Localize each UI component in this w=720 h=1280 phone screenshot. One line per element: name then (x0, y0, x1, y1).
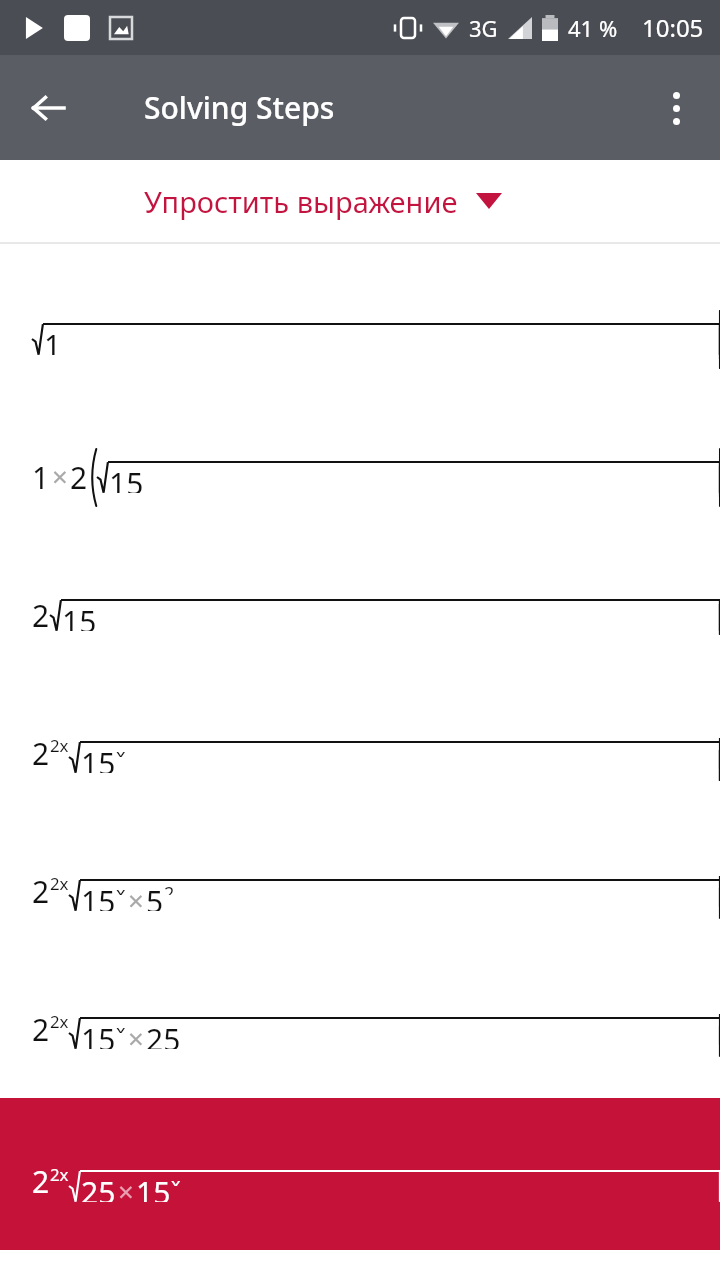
staticText: 10:05 (642, 11, 704, 44)
staticText: 2 (32, 1009, 50, 1050)
staticText: 15 (81, 881, 116, 911)
staticText: 2x (50, 872, 69, 895)
staticText: Solving Steps (144, 87, 335, 128)
button[interactable]: Упростить выражение (0, 160, 720, 242)
staticText: 1 (32, 457, 50, 498)
button[interactable]: 2 (0, 546, 720, 684)
staticText: 25 (81, 1172, 116, 1202)
staticText: x (116, 881, 126, 895)
staticText: 15 (81, 743, 116, 773)
button[interactable]: 2 (0, 822, 720, 960)
button[interactable]: 2 (0, 684, 720, 822)
button[interactable]: 1 (0, 408, 720, 546)
staticText: 2x (50, 734, 69, 757)
button[interactable]: 2 (0, 1098, 720, 1250)
staticText: 2 (70, 457, 88, 498)
button[interactable]: Back (18, 78, 78, 138)
staticText: 2x (50, 1163, 69, 1186)
staticText: 2 (32, 595, 50, 636)
staticText: 2 (32, 871, 50, 912)
button[interactable]: 1 (0, 270, 720, 408)
staticText: 25 (146, 1019, 181, 1049)
staticText: 15 (81, 1019, 116, 1049)
staticText: 15 (109, 463, 144, 493)
staticText: × (52, 457, 68, 495)
staticText: × (128, 881, 144, 909)
staticText: 41 % (568, 13, 618, 43)
staticText: × (128, 1019, 144, 1047)
staticText: 15 (62, 601, 97, 631)
staticText: x (171, 1172, 181, 1186)
staticText: 3G (469, 13, 498, 43)
staticText: x (116, 1019, 126, 1033)
staticText: Упростить выражение (144, 182, 458, 221)
staticText: 2 (32, 733, 50, 774)
staticText: x (116, 743, 126, 757)
staticText: 15 (136, 1172, 171, 1202)
staticText: × (118, 1172, 134, 1200)
button[interactable]: More options (648, 80, 704, 136)
button[interactable]: 2 (0, 960, 720, 1098)
staticText: 2 (32, 1161, 50, 1202)
staticText: 5 (146, 881, 164, 911)
staticText: 2x (50, 1010, 69, 1033)
staticText: 2 (164, 881, 175, 895)
staticText: 1 (44, 325, 62, 355)
